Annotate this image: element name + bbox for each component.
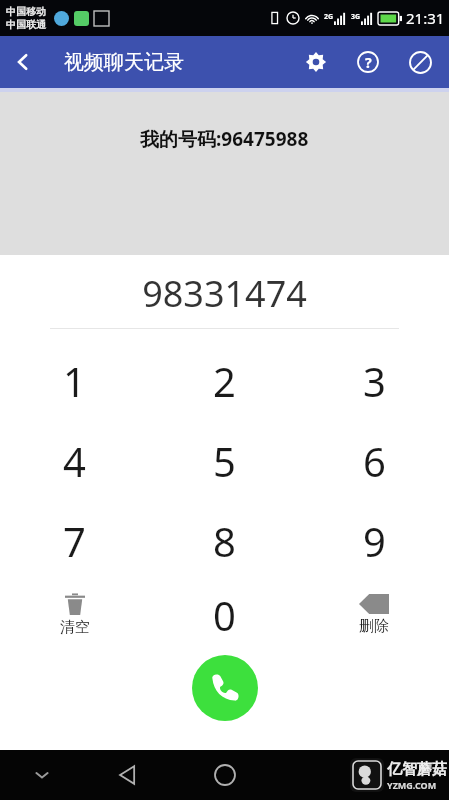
button[interactable]: 6	[299, 421, 449, 501]
staticText: 21:31	[406, 8, 445, 28]
button[interactable]: 3	[299, 341, 449, 421]
staticText: 我的号码:96475988	[140, 126, 309, 152]
staticText: 7	[63, 514, 86, 568]
button[interactable]: Home	[202, 752, 248, 798]
staticText: 3G	[351, 12, 361, 22]
staticText: 清空	[60, 618, 90, 637]
staticText: YZMG.COM	[387, 779, 437, 791]
button[interactable]: 清空	[0, 581, 149, 649]
button[interactable]: Call	[192, 655, 258, 721]
staticText: 0	[213, 588, 236, 642]
button[interactable]: 1	[0, 341, 149, 421]
staticText: 2G	[324, 12, 334, 22]
staticText: 2	[213, 354, 236, 408]
staticText: 1	[63, 354, 86, 408]
staticText: 亿智蘑菇	[387, 760, 447, 779]
staticText: 中国移动	[6, 5, 46, 18]
staticText: 视频聊天记录	[64, 50, 184, 75]
staticText: 4	[63, 434, 86, 488]
button[interactable]: Block	[403, 45, 437, 79]
button[interactable]: 删除	[299, 581, 449, 649]
button[interactable]: 0	[149, 581, 299, 649]
staticText: 删除	[359, 617, 389, 636]
button[interactable]: 7	[0, 501, 149, 581]
button[interactable]: 8	[149, 501, 299, 581]
button[interactable]: Settings	[299, 45, 333, 79]
button[interactable]: Back	[105, 752, 151, 798]
staticText: 9	[363, 514, 386, 568]
staticText: 中国联通	[6, 18, 46, 31]
button[interactable]: 9	[299, 501, 449, 581]
staticText: 5	[213, 434, 236, 488]
staticText: 98331474	[0, 269, 449, 318]
button[interactable]: 4	[0, 421, 149, 501]
staticText: 3	[363, 354, 386, 408]
staticText: 8	[213, 514, 236, 568]
button[interactable]: 5	[149, 421, 299, 501]
button[interactable]: Back	[0, 39, 46, 85]
button[interactable]: Help	[351, 45, 385, 79]
staticText: ?	[365, 53, 372, 72]
button[interactable]: 2	[149, 341, 299, 421]
staticText: 6	[363, 434, 386, 488]
button[interactable]: Hide	[22, 755, 62, 795]
